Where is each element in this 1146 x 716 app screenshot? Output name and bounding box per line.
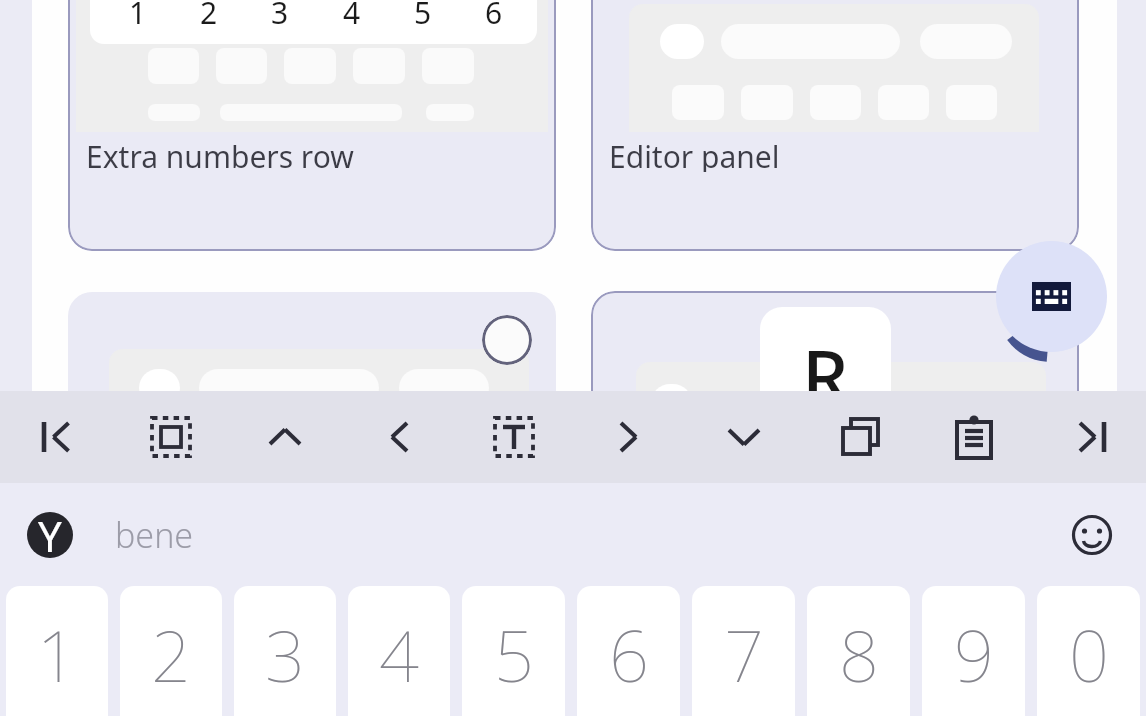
button[interactable]: 8 bbox=[807, 586, 910, 716]
button[interactable]: Select text bbox=[456, 391, 571, 483]
staticText: 5 bbox=[414, 0, 432, 24]
staticText: 4 bbox=[343, 0, 361, 24]
button[interactable]: bene bbox=[115, 512, 194, 558]
button[interactable]: 6 bbox=[577, 586, 680, 716]
button[interactable]: Move to start bbox=[0, 391, 114, 483]
button[interactable]: Move down bbox=[686, 391, 801, 483]
button[interactable]: Select layout bbox=[482, 315, 532, 365]
button[interactable]: Copy bbox=[801, 391, 916, 483]
staticText: 3 bbox=[271, 0, 289, 24]
staticText: 7 bbox=[724, 607, 764, 702]
button[interactable]: 5 bbox=[462, 586, 565, 716]
button[interactable]: Move right bbox=[571, 391, 686, 483]
button[interactable]: 4 bbox=[348, 586, 450, 716]
button[interactable]: 1 bbox=[6, 586, 108, 716]
button[interactable]: Select layout bbox=[68, 292, 556, 492]
staticText: 6 bbox=[485, 0, 503, 24]
button[interactable]: 2 bbox=[120, 586, 222, 716]
button[interactable]: 1 bbox=[68, 0, 556, 251]
button[interactable]: 0 bbox=[1037, 586, 1140, 716]
staticText: 0 bbox=[1069, 607, 1109, 702]
button[interactable]: 7 bbox=[692, 586, 795, 716]
button[interactable]: Move left bbox=[342, 391, 456, 483]
staticText: 8 bbox=[839, 607, 879, 702]
staticText: 1 bbox=[37, 607, 77, 702]
staticText: R bbox=[802, 325, 849, 425]
staticText: 9 bbox=[954, 607, 994, 702]
button[interactable]: Editor panel bbox=[591, 0, 1079, 251]
staticText: 4 bbox=[379, 607, 419, 702]
button[interactable]: Move up bbox=[228, 391, 342, 483]
button[interactable]: 3 bbox=[234, 586, 336, 716]
staticText: 5 bbox=[494, 607, 534, 702]
staticText: Extra numbers row bbox=[86, 136, 354, 172]
button[interactable]: Paste bbox=[916, 391, 1031, 483]
staticText: 6 bbox=[609, 607, 649, 702]
button[interactable]: 9 bbox=[922, 586, 1025, 716]
staticText: 2 bbox=[151, 607, 191, 702]
button[interactable]: Select all bbox=[114, 391, 228, 483]
staticText: Y bbox=[38, 512, 62, 553]
button[interactable]: Switch keyboard layout bbox=[996, 241, 1107, 352]
staticText: 2 bbox=[200, 0, 218, 24]
button[interactable]: R bbox=[591, 291, 1079, 491]
button[interactable]: Assistant bbox=[27, 512, 73, 558]
button[interactable]: Move to end bbox=[1031, 391, 1146, 483]
staticText: Editor panel bbox=[609, 136, 780, 172]
button[interactable]: Emoji bbox=[1060, 503, 1124, 567]
staticText: 3 bbox=[265, 607, 305, 702]
staticText: 1 bbox=[129, 0, 147, 24]
